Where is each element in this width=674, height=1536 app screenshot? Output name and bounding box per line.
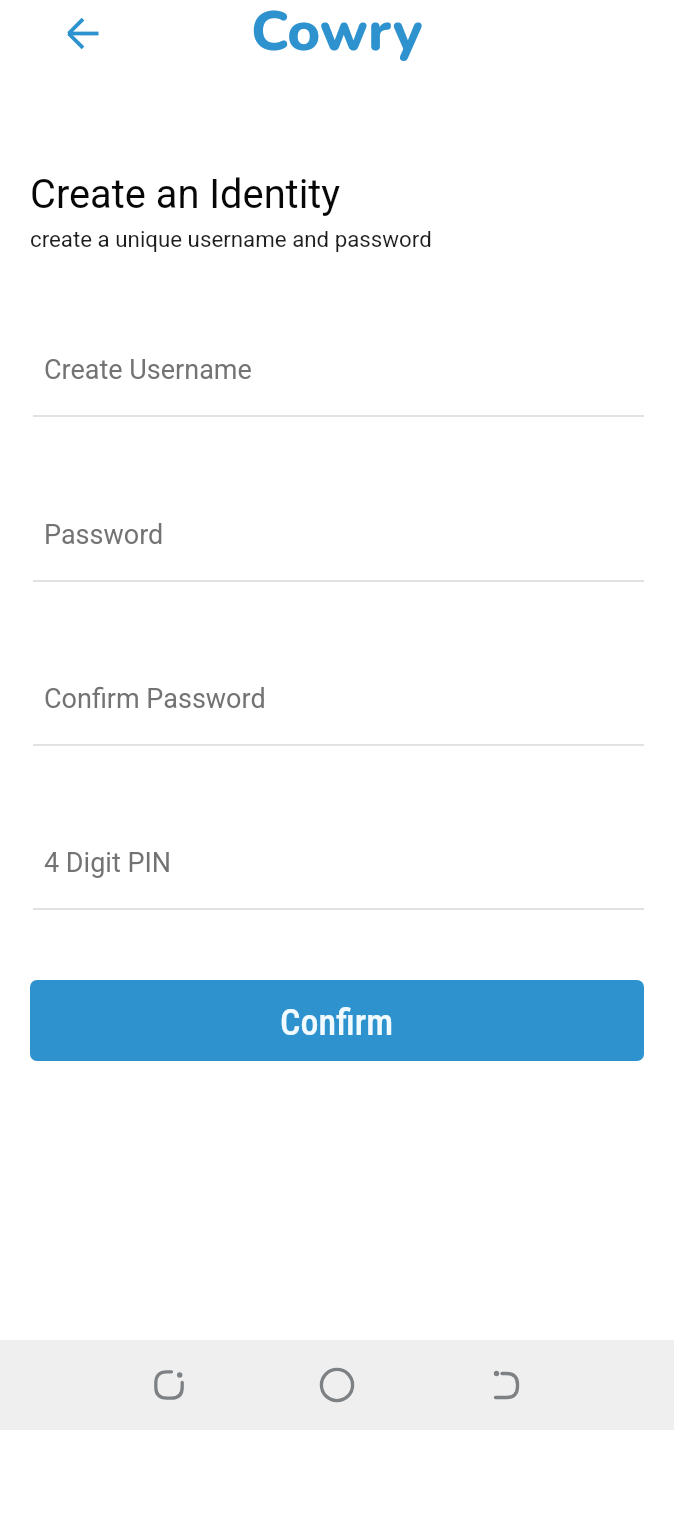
button[interactable]: Back (472, 1342, 540, 1428)
staticText: Create an Identity (30, 171, 341, 218)
staticText: Confirm (280, 1002, 394, 1044)
button[interactable]: 4 Digit PIN (33, 847, 644, 921)
button[interactable]: Confirm Password (33, 683, 644, 757)
button[interactable]: Create Username (33, 354, 644, 428)
staticText: Confirm Password (44, 683, 266, 715)
staticText: Cowry (251, 0, 423, 69)
staticText: Create Username (44, 354, 252, 386)
staticText: 4 Digit PIN (44, 847, 172, 879)
button[interactable]: Home (303, 1342, 371, 1428)
staticText: create a unique username and password (30, 226, 432, 252)
button[interactable]: Recent apps (135, 1342, 203, 1428)
button[interactable]: Password (33, 519, 644, 593)
button[interactable]: Back (58, 16, 110, 52)
staticText: Password (44, 519, 164, 551)
button[interactable]: Confirm (30, 980, 644, 1061)
